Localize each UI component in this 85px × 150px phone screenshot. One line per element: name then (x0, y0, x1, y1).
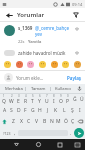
staticText: @_cemre_bahçeyev (35, 25, 71, 37)
staticText: I (53, 98, 55, 105)
button[interactable]: N (48, 116, 55, 127)
staticText: E (17, 98, 20, 105)
button[interactable]: 2 (8, 94, 15, 105)
button[interactable]: 3 (15, 94, 22, 105)
button[interactable]: I (76, 105, 84, 116)
button[interactable]: s_1369 (0, 22, 85, 47)
button[interactable]: 7 (43, 94, 50, 105)
button[interactable]: Backspace (76, 116, 85, 127)
staticText: Kullanıcı (55, 86, 72, 92)
button[interactable]: Back (4, 10, 14, 20)
button[interactable]: Like (73, 50, 81, 56)
button[interactable]: . (68, 128, 74, 138)
button[interactable]: Back (6, 139, 27, 150)
button[interactable]: Paylaş (67, 75, 81, 81)
button[interactable]: K (52, 105, 60, 116)
staticText: P (66, 98, 70, 105)
staticText: 8 (53, 94, 55, 98)
staticText: L (63, 107, 66, 114)
button[interactable]: Shift (0, 116, 9, 127)
staticText: R (24, 98, 28, 105)
staticText: Z (12, 118, 15, 125)
staticText: I (79, 107, 81, 114)
button[interactable]: X (17, 116, 25, 127)
staticText: J (47, 107, 49, 114)
staticText: Ü (80, 96, 84, 103)
staticText: T (31, 98, 34, 105)
button[interactable]: V (33, 116, 41, 127)
button[interactable]: Yanıtla (28, 39, 42, 44)
button[interactable]: J (44, 105, 52, 116)
button[interactable]: laugh (38, 60, 47, 69)
button[interactable]: 8 (50, 94, 57, 105)
staticText: Q (2, 98, 6, 105)
button[interactable]: fire (15, 60, 24, 69)
button[interactable]: Home (27, 139, 49, 150)
staticText: N (50, 118, 54, 125)
button[interactable]: Ü (78, 94, 85, 105)
button[interactable]: smile (3, 60, 12, 69)
staticText: 2 (11, 94, 13, 98)
button[interactable]: Ğ (71, 94, 78, 105)
staticText: s_1369 (18, 25, 33, 31)
staticText: D (17, 107, 21, 114)
button[interactable]: Ş (68, 105, 76, 116)
button[interactable]: 9 (57, 94, 64, 105)
button[interactable]: G (29, 105, 36, 116)
button[interactable]: Like (73, 25, 81, 33)
button[interactable]: Voice input (75, 84, 83, 93)
button[interactable]: ?123 (1, 128, 12, 138)
button[interactable]: 0 (64, 94, 71, 105)
staticText: 6 (39, 94, 41, 98)
button[interactable]: D (15, 105, 22, 116)
staticText: 9 (60, 94, 62, 98)
button[interactable]: Merhaba (2, 84, 25, 93)
button[interactable]: Yorum ekle... (16, 75, 67, 81)
button[interactable]: 5 (29, 94, 36, 105)
button[interactable]: , (12, 128, 18, 138)
staticText: 22s (18, 39, 25, 44)
button[interactable]: Z (9, 116, 17, 127)
staticText: 0 (67, 94, 69, 98)
staticText: ?123 (3, 131, 11, 136)
button[interactable]: clap (73, 60, 82, 69)
button[interactable]: L (60, 105, 68, 116)
button[interactable]: Send (74, 128, 84, 138)
button[interactable]: F (22, 105, 29, 116)
button[interactable]: M (55, 116, 62, 127)
staticText: M (56, 118, 61, 125)
button[interactable]: Ö (62, 116, 69, 127)
button[interactable]: 6 (36, 94, 43, 105)
staticText: B (43, 118, 47, 125)
button[interactable]: B (41, 116, 48, 127)
staticText: . (70, 130, 72, 137)
staticText: Yorumlar (17, 11, 45, 19)
staticText: 1 (3, 94, 5, 98)
staticText: G (31, 107, 35, 114)
button[interactable]: Ç (69, 116, 76, 127)
staticText: V (35, 118, 39, 125)
button[interactable]: C (25, 116, 33, 127)
button[interactable]: wow (61, 60, 70, 69)
staticText: Ğ (73, 96, 77, 103)
staticText: X (20, 118, 23, 125)
button[interactable]: zahide havadrol müzik hazırlar, albümü v… (0, 47, 85, 59)
button[interactable]: S (8, 105, 15, 116)
staticText: 09:14 (72, 2, 83, 7)
button[interactable]: A (1, 105, 8, 116)
button[interactable]: 1 (0, 94, 8, 105)
button[interactable]: Filter (71, 10, 81, 20)
button[interactable]: Recents (49, 139, 71, 150)
button[interactable]: H (36, 105, 44, 116)
staticText: O (59, 98, 63, 105)
button[interactable]: 4 (22, 94, 29, 105)
button[interactable]: heart (26, 60, 35, 69)
button[interactable]: Tamam (26, 84, 50, 93)
staticText: Tamam (31, 86, 46, 92)
staticText: 4 (25, 94, 27, 98)
button[interactable]: cry (50, 60, 59, 69)
button[interactable]: Hide keyboard (71, 139, 83, 150)
button[interactable]: Kullanıcı (51, 84, 75, 93)
staticText: 7 (46, 94, 48, 98)
